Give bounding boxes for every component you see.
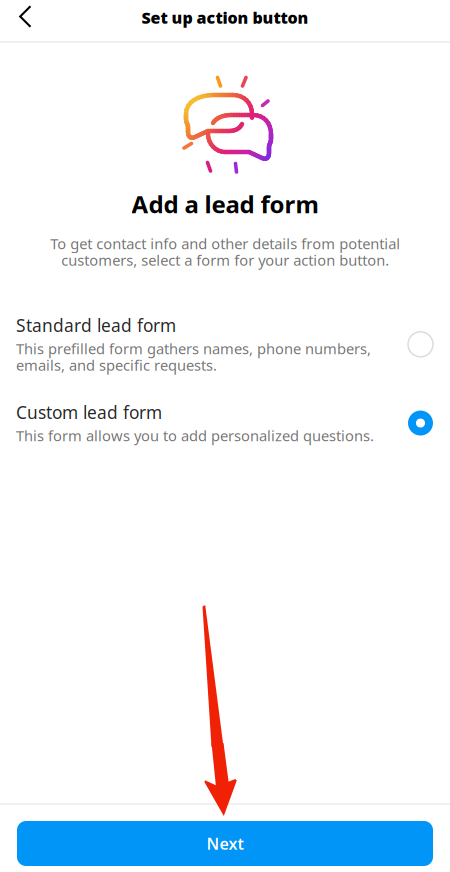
staticText: To get contact info and other details fr… [50, 234, 400, 270]
button[interactable]: Custom lead form [0, 401, 450, 445]
staticText: Add a lead form [131, 188, 318, 220]
staticText: Set up action button [141, 7, 308, 28]
staticText: Custom lead form [16, 401, 162, 424]
staticText: This prefilled form gathers names, phone… [16, 339, 371, 375]
staticText: Next [206, 833, 243, 854]
button[interactable]: Back [0, 0, 44, 41]
staticText: This form allows you to add personalized… [16, 426, 374, 445]
button[interactable]: Next [17, 821, 433, 866]
staticText: Standard lead form [16, 314, 176, 337]
button[interactable]: Standard lead form [0, 314, 450, 375]
